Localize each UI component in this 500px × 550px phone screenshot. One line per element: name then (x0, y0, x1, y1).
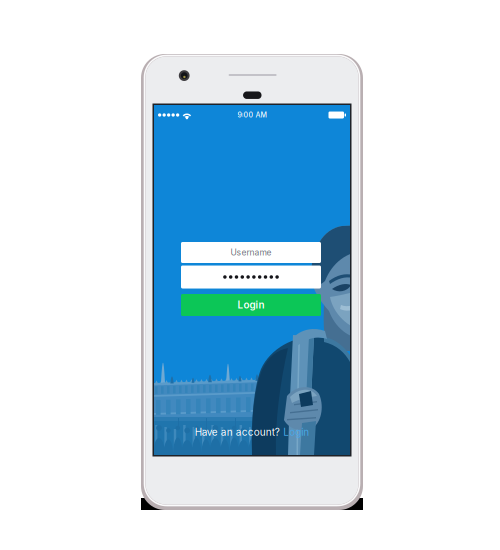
staticText: Login (283, 426, 309, 438)
button[interactable]: Login (283, 426, 309, 438)
staticText: Login (237, 299, 264, 311)
staticText: Username (230, 247, 271, 258)
staticText: 9:00 AM (237, 111, 266, 119)
staticText: Have an account? (195, 426, 280, 438)
button[interactable]: Username (181, 242, 321, 263)
button[interactable]: Login (181, 294, 321, 316)
button[interactable] (181, 265, 321, 288)
